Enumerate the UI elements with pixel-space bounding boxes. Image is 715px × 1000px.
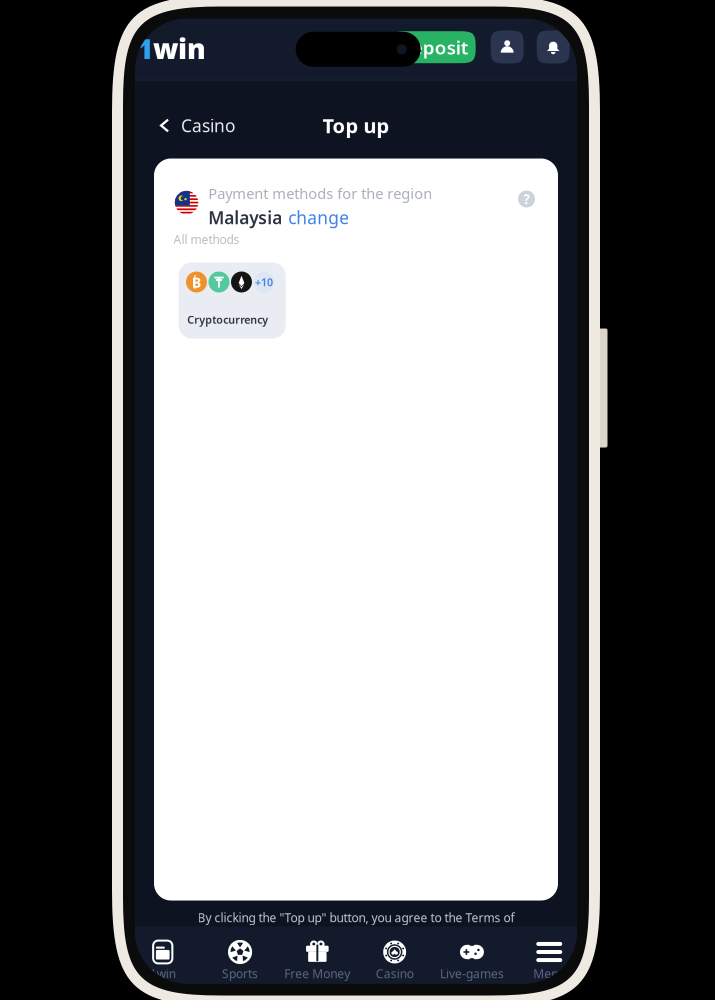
staticText: All methods xyxy=(173,231,239,247)
staticText: Deposit xyxy=(398,35,469,60)
staticText: By clicking the "Top up" button, you agr… xyxy=(197,910,514,925)
button[interactable]: Casino xyxy=(356,926,433,983)
staticText: change xyxy=(288,206,349,229)
staticText: Free Money xyxy=(284,966,350,981)
button[interactable]: Free Money xyxy=(279,926,356,983)
staticText: Malaysia xyxy=(208,206,282,229)
staticText: ? xyxy=(523,190,529,208)
staticText: Top up xyxy=(322,112,389,139)
staticText: Sports xyxy=(222,966,258,981)
button[interactable]: 1win xyxy=(124,926,201,983)
button[interactable]: Casino xyxy=(148,105,245,145)
staticText: Cryptocurrency xyxy=(187,312,268,327)
staticText: 1win xyxy=(150,966,176,981)
button[interactable]: B xyxy=(179,262,286,338)
button[interactable]: Help xyxy=(518,190,535,207)
staticText: Menu xyxy=(533,966,565,981)
staticText: Casino xyxy=(181,114,235,137)
staticText: +10 xyxy=(255,275,273,289)
staticText: Payment methods for the region xyxy=(208,183,432,203)
button[interactable]: Profile xyxy=(491,30,524,63)
staticText: Live-games xyxy=(440,966,504,981)
button[interactable]: Sports xyxy=(201,926,279,983)
staticText: 1 xyxy=(137,30,153,67)
button[interactable]: Live-games xyxy=(433,926,511,983)
button[interactable]: Notifications xyxy=(537,30,570,63)
staticText: Casino xyxy=(376,966,414,981)
button[interactable]: 1win home xyxy=(133,28,210,68)
staticText: win xyxy=(153,30,206,67)
button[interactable]: Deposit xyxy=(391,31,476,63)
button[interactable]: change xyxy=(288,206,349,229)
staticText: B xyxy=(191,272,201,292)
button[interactable]: Menu xyxy=(511,926,588,983)
